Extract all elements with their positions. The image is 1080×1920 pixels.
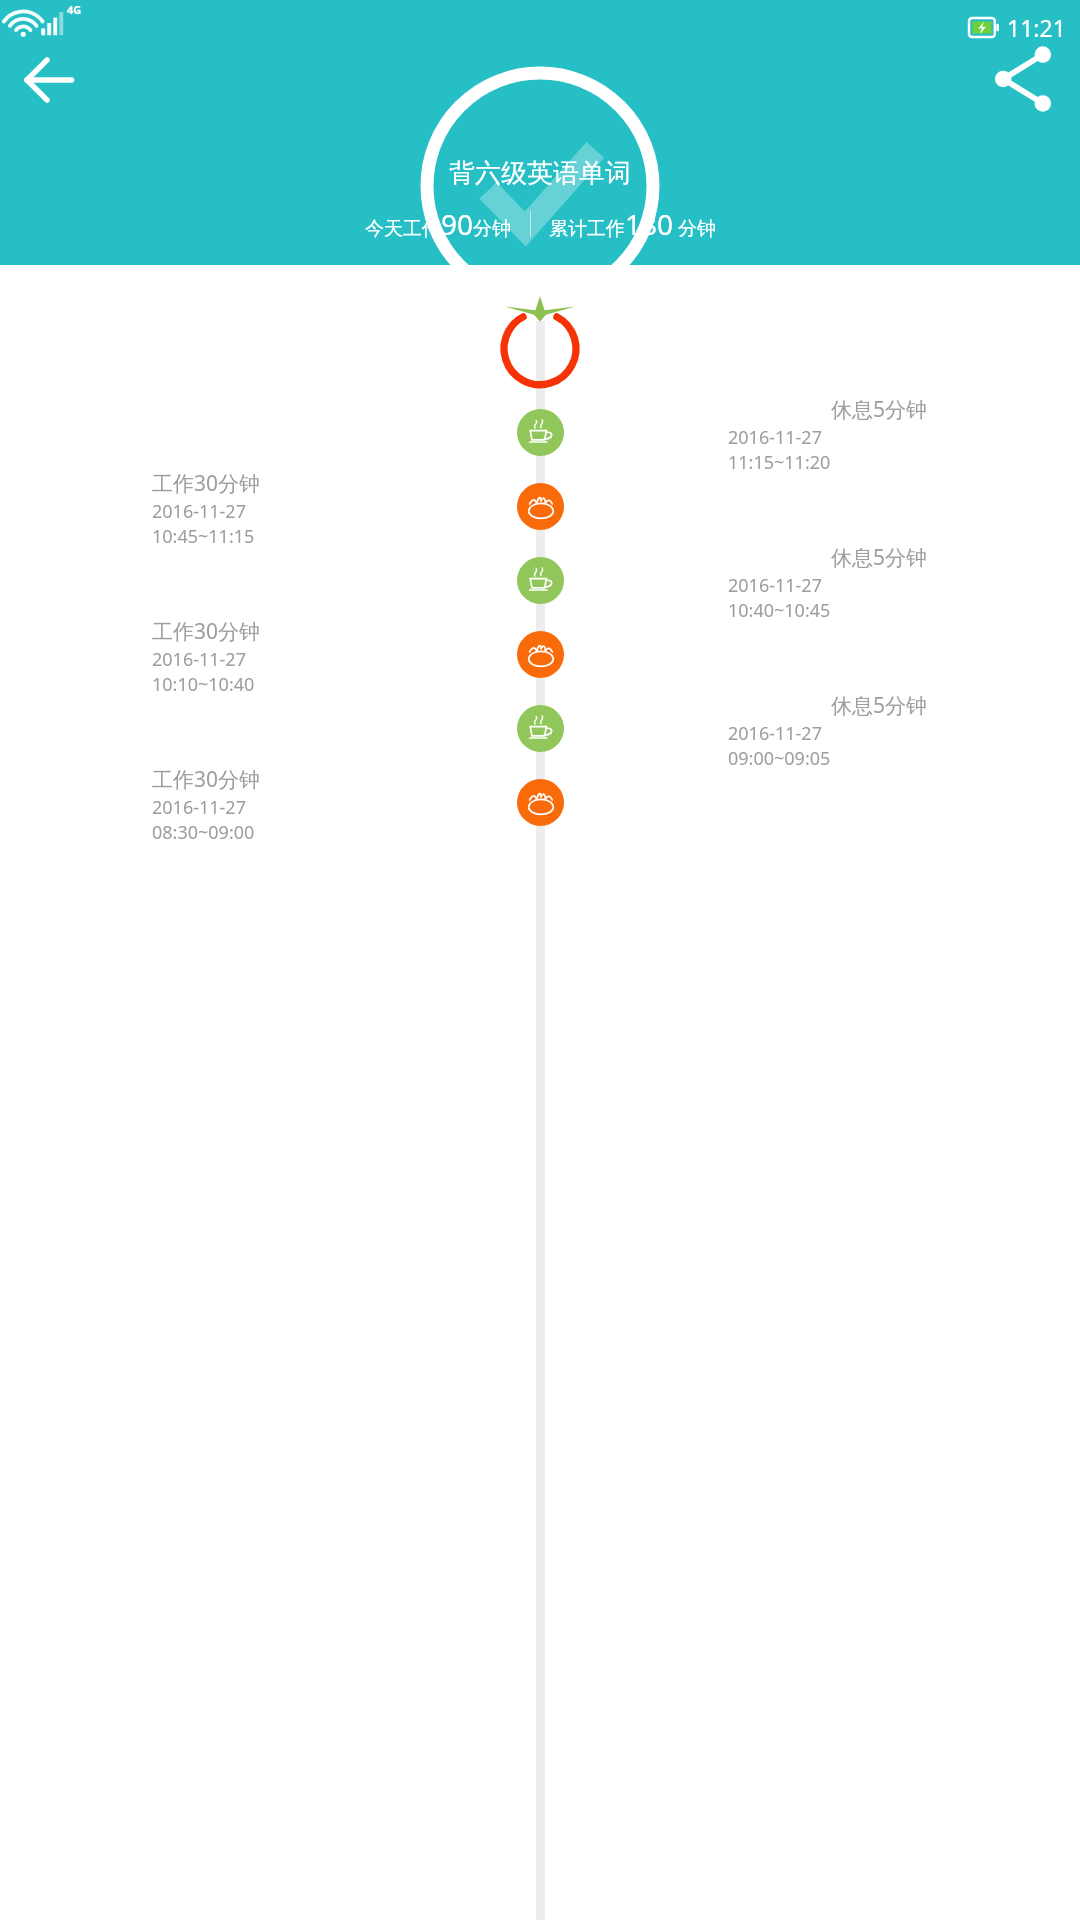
staticText: 休息5分钟: [831, 395, 928, 424]
staticText: 11:21: [1007, 12, 1066, 43]
button[interactable]: 休息5分钟: [0, 691, 1080, 765]
staticText: 2016-11-27 09:00~09:05: [728, 721, 928, 765]
button[interactable]: 休息5分钟: [0, 395, 1080, 469]
staticText: 累计工作180 分钟: [549, 205, 716, 243]
staticText: 工作30分钟: [152, 617, 261, 646]
button[interactable]: 工作30分钟: [0, 469, 1080, 543]
staticText: 休息5分钟: [831, 543, 928, 572]
staticText: 2016-11-27 11:15~11:20: [728, 425, 928, 469]
button[interactable]: Back: [14, 44, 86, 116]
staticText: 工作30分钟: [152, 765, 261, 794]
button[interactable]: 工作30分钟: [0, 765, 1080, 839]
button[interactable]: 休息5分钟: [0, 543, 1080, 617]
staticText: 2016-11-27 10:45~11:15: [152, 499, 352, 543]
staticText: 工作30分钟: [152, 469, 261, 498]
button[interactable]: Share: [990, 46, 1056, 112]
staticText: 今天工作90分钟: [365, 205, 512, 243]
staticText: 2016-11-27 08:30~09:00: [152, 795, 352, 839]
staticText: 2016-11-27 10:40~10:45: [728, 573, 928, 617]
staticText: 2016-11-27 10:10~10:40: [152, 647, 352, 691]
staticText: 休息5分钟: [831, 691, 928, 720]
button[interactable]: 工作30分钟: [0, 617, 1080, 691]
staticText: 4G: [67, 2, 82, 17]
staticText: 背六级英语单词: [0, 157, 1080, 190]
